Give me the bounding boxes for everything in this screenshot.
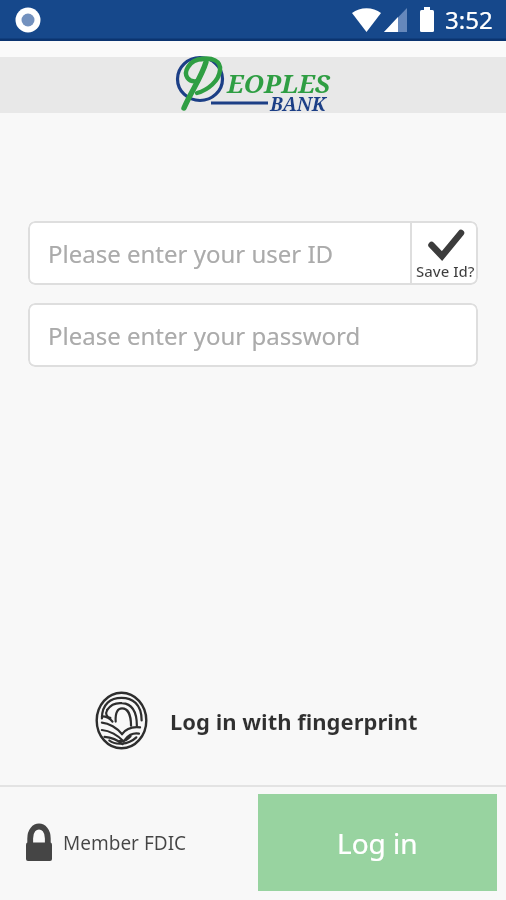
button[interactable]: Please enter your user ID bbox=[48, 221, 410, 285]
staticText: Log in bbox=[337, 824, 418, 862]
staticText: BANK bbox=[270, 91, 326, 117]
button[interactable]: Log in bbox=[258, 794, 497, 891]
button[interactable]: Member FDIC bbox=[26, 825, 187, 861]
button[interactable]: Log in with fingerprint bbox=[95, 691, 418, 750]
staticText: Please enter your password bbox=[48, 319, 361, 352]
staticText: Member FDIC bbox=[63, 830, 187, 856]
staticText: Please enter your user ID bbox=[48, 237, 334, 270]
staticText: 3:52 bbox=[445, 3, 493, 36]
button[interactable]: Please enter your password bbox=[28, 303, 478, 367]
button[interactable]: Save Id bbox=[412, 221, 478, 285]
staticText: Log in with fingerprint bbox=[170, 706, 418, 736]
staticText: EOPLES bbox=[227, 65, 330, 100]
staticText: Save Id? bbox=[416, 261, 475, 281]
